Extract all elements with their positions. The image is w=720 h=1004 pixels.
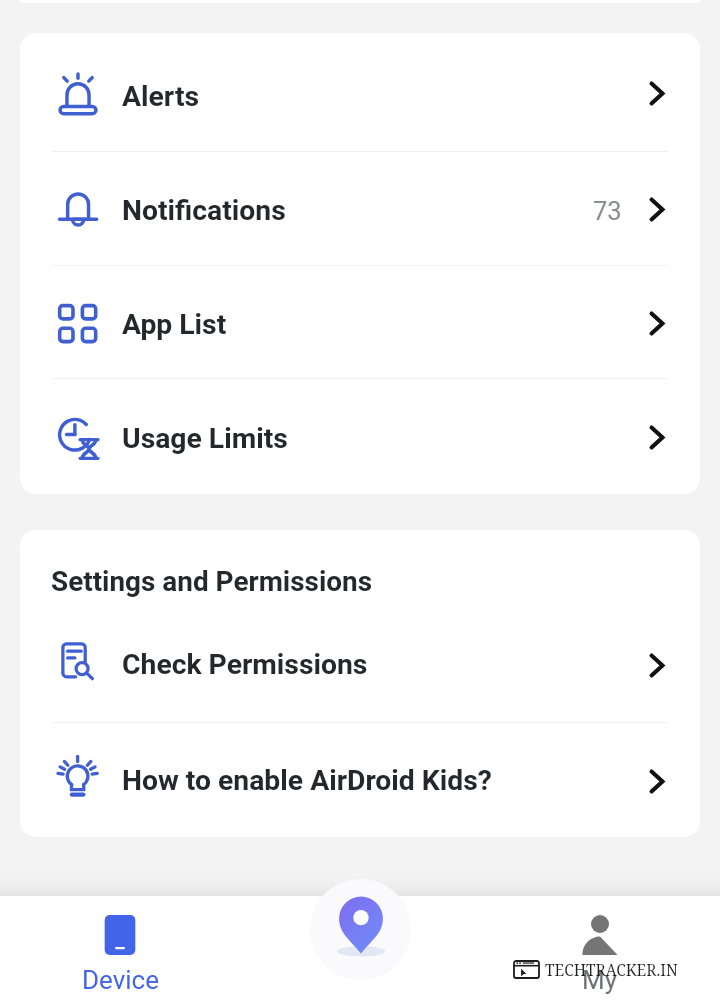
staticText: Device [82, 965, 159, 995]
staticText: Alerts [122, 80, 200, 113]
staticText: Check Permissions [122, 648, 368, 681]
staticText: Notifications [122, 194, 286, 227]
button[interactable]: My [480, 896, 720, 995]
button[interactable]: Check Permissions [20, 607, 700, 722]
button[interactable]: Alerts [20, 33, 700, 151]
button[interactable]: Usage Limits [20, 379, 700, 494]
staticText: Usage Limits [122, 422, 288, 455]
button[interactable]: Notifications [20, 152, 700, 265]
button[interactable]: App List [20, 266, 700, 378]
staticText: 73 [593, 196, 622, 226]
staticText: TECHTRACKER.IN [545, 959, 678, 980]
staticText: My [582, 965, 618, 995]
button[interactable]: Location [310, 879, 411, 980]
button[interactable]: Device [0, 896, 240, 995]
staticText: Settings and Permissions [51, 565, 373, 598]
staticText: App List [122, 308, 227, 341]
staticText: How to enable AirDroid Kids? [122, 764, 492, 797]
button[interactable]: How to enable AirDroid Kids? [20, 723, 700, 837]
